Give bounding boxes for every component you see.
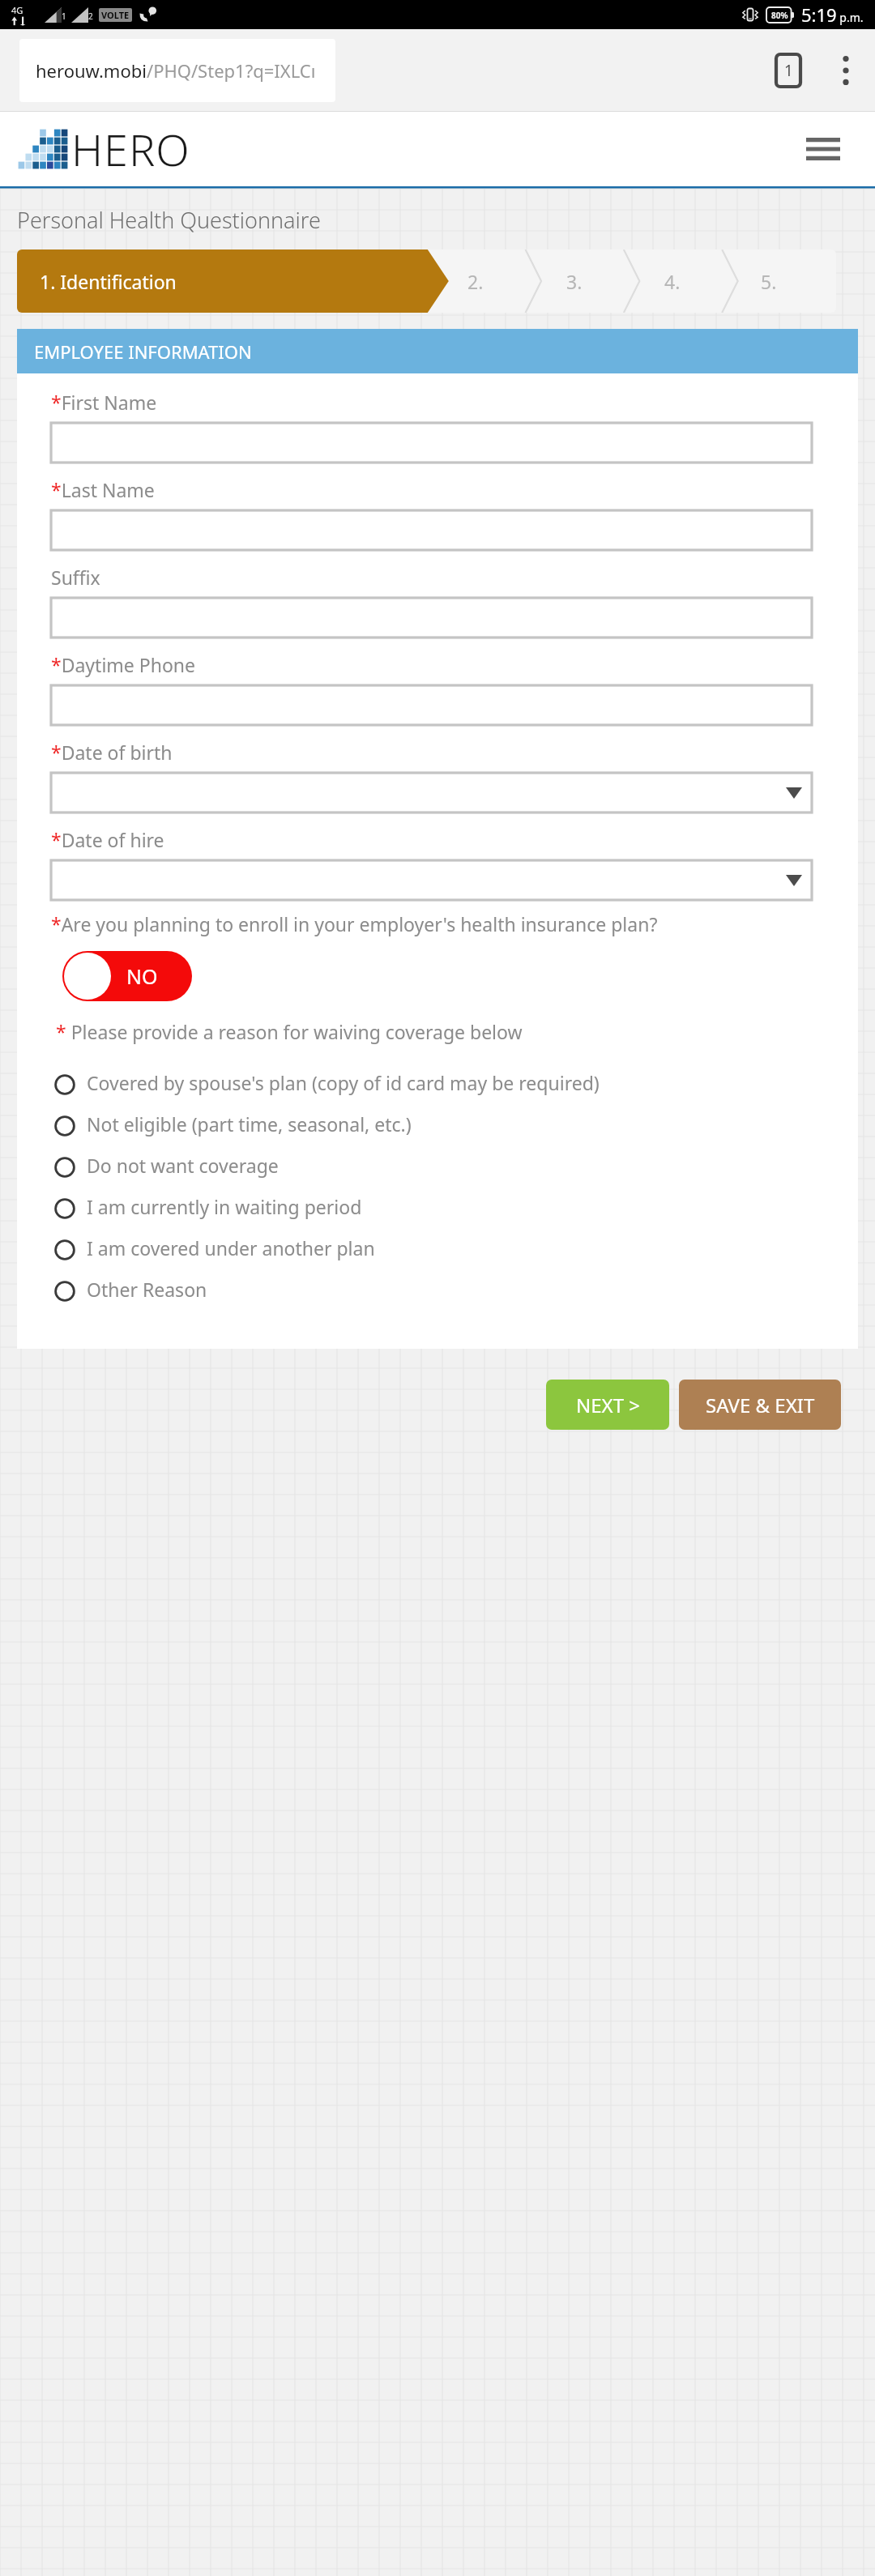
- button[interactable]: [51, 510, 812, 550]
- staticText: NEXT >: [576, 1392, 640, 1418]
- staticText: 5:19 p.m.: [801, 2, 864, 27]
- staticText: SAVE & EXIT: [706, 1392, 815, 1418]
- staticText: Covered by spouse's plan (copy of id car…: [87, 1070, 600, 1095]
- staticText: 3.: [566, 269, 583, 294]
- button[interactable]: Do not want coverage: [51, 1145, 812, 1186]
- staticText: 1: [62, 11, 66, 22]
- staticText: 1: [784, 60, 793, 81]
- staticText: 4G: [11, 4, 23, 16]
- staticText: *Date of hire: [51, 827, 164, 852]
- staticText: VOLTE: [101, 9, 130, 21]
- staticText: 5.: [761, 269, 777, 294]
- staticText: herouw.mobi/PHQ/Step1?q=IXLCı: [36, 58, 316, 83]
- button[interactable]: Menu: [792, 118, 854, 180]
- staticText: I am currently in waiting period: [87, 1194, 362, 1219]
- button[interactable]: Covered by spouse's plan (copy of id car…: [51, 1062, 812, 1103]
- button[interactable]: Tabs: [760, 42, 817, 99]
- staticText: *Daytime Phone: [51, 652, 196, 677]
- button[interactable]: [51, 860, 812, 900]
- button[interactable]: [51, 423, 812, 463]
- button[interactable]: [51, 773, 812, 812]
- staticText: HERO: [71, 119, 190, 179]
- staticText: Other Reason: [87, 1277, 207, 1302]
- staticText: 4.: [664, 269, 681, 294]
- staticText: Personal Health Questionnaire: [17, 205, 321, 235]
- button[interactable]: Other Reason: [51, 1269, 812, 1310]
- button[interactable]: [51, 685, 812, 725]
- staticText: 80%: [771, 10, 788, 21]
- button[interactable]: Not eligible (part time, seasonal, etc.): [51, 1103, 812, 1145]
- staticText: NO: [126, 962, 158, 990]
- staticText: *Are you planning to enroll in your empl…: [51, 911, 658, 936]
- staticText: *Last Name: [51, 477, 155, 502]
- staticText: *First Name: [51, 390, 157, 415]
- staticText: 2: [88, 11, 93, 22]
- button[interactable]: NEXT >: [546, 1380, 669, 1430]
- button[interactable]: [51, 598, 812, 638]
- button[interactable]: SAVE & EXIT: [679, 1380, 841, 1430]
- staticText: Suffix: [51, 565, 100, 590]
- button[interactable]: I am currently in waiting period: [51, 1186, 812, 1227]
- staticText: EMPLOYEE INFORMATION: [34, 339, 252, 364]
- staticText: I am covered under another plan: [87, 1235, 375, 1260]
- button[interactable]: More options: [817, 41, 875, 100]
- staticText: Do not want coverage: [87, 1153, 279, 1178]
- staticText: Not eligible (part time, seasonal, etc.): [87, 1111, 412, 1137]
- staticText: 2.: [467, 269, 484, 294]
- staticText: *Date of birth: [51, 740, 173, 765]
- button[interactable]: I am covered under another plan: [51, 1227, 812, 1269]
- staticText: * Please provide a reason for waiving co…: [56, 1019, 523, 1044]
- staticText: 1. Identification: [40, 269, 177, 294]
- button[interactable]: herouw.mobi/PHQ/Step1?q=IXLCı: [19, 39, 335, 102]
- button[interactable]: NO: [62, 951, 192, 1001]
